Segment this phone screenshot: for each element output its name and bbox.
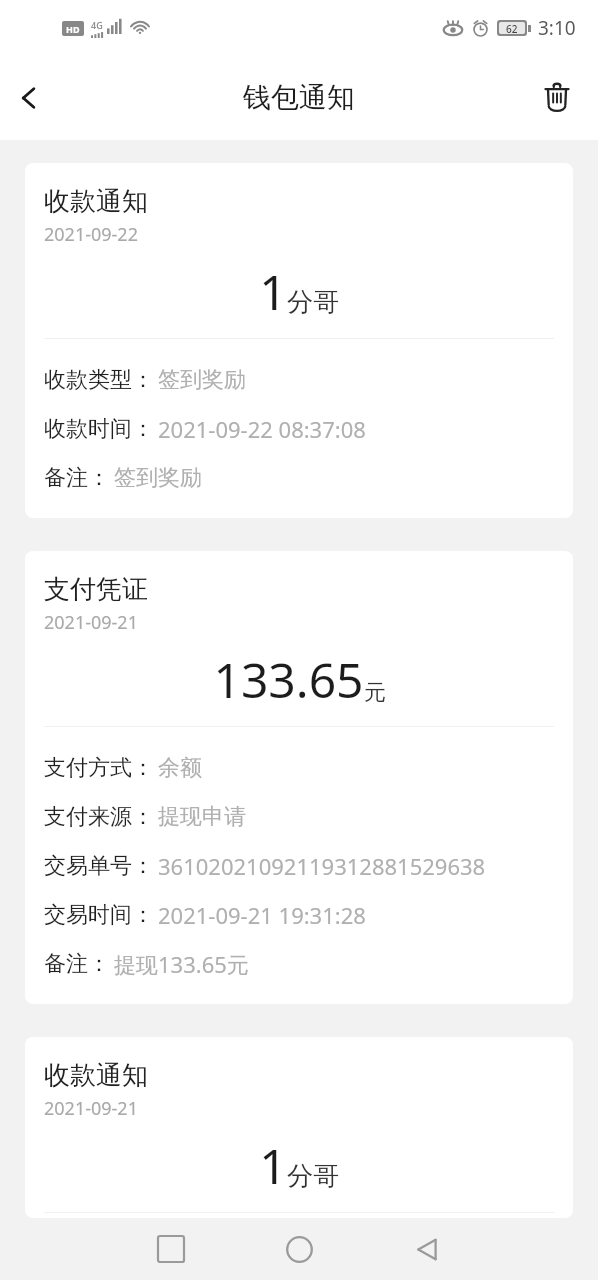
staticText: 提现133.65元 bbox=[114, 949, 249, 979]
staticText: 支付凭证 bbox=[44, 573, 148, 606]
staticText: 2021-09-21 19:31:28 bbox=[158, 900, 366, 930]
staticText: 余额 bbox=[158, 754, 202, 782]
staticText: 分哥 bbox=[287, 1160, 339, 1193]
button[interactable]: 支付凭证 bbox=[25, 551, 573, 1004]
staticText: 2021-09-22 08:37:08 bbox=[158, 414, 366, 444]
staticText: 2021-09-21 bbox=[44, 610, 138, 635]
staticText: 签到奖励 bbox=[114, 464, 202, 492]
staticText: 收款通知 bbox=[44, 185, 148, 218]
staticText: 1 bbox=[259, 1133, 287, 1198]
staticText: HD bbox=[66, 23, 80, 35]
button[interactable]: Home bbox=[235, 1218, 363, 1280]
staticText: 133.65 bbox=[213, 647, 364, 712]
staticText: 备注： bbox=[44, 464, 110, 492]
staticText: 元 bbox=[364, 679, 386, 707]
button[interactable]: Delete all bbox=[530, 71, 584, 125]
staticText: 钱包通知 bbox=[243, 80, 355, 115]
button[interactable]: 收款通知 bbox=[25, 163, 573, 518]
staticText: 收款类型： bbox=[44, 366, 154, 394]
staticText: 1 bbox=[259, 259, 287, 324]
staticText: 2021-09-21 bbox=[44, 1096, 138, 1121]
staticText: 签到奖励 bbox=[158, 366, 246, 394]
button[interactable]: Back bbox=[0, 69, 58, 127]
staticText: 交易时间： bbox=[44, 901, 154, 929]
staticText: 支付来源： bbox=[44, 803, 154, 831]
staticText: 36102021092119312881529638 bbox=[158, 851, 486, 881]
staticText: 分哥 bbox=[287, 286, 339, 319]
staticText: 62 bbox=[506, 22, 518, 34]
staticText: 4G bbox=[91, 19, 103, 31]
staticText: 支付方式： bbox=[44, 754, 154, 782]
button[interactable]: Back bbox=[363, 1218, 491, 1280]
staticText: 3:10 bbox=[538, 15, 576, 41]
staticText: 2021-09-22 bbox=[44, 222, 138, 247]
staticText: 交易单号： bbox=[44, 852, 154, 880]
button[interactable]: Recent apps bbox=[107, 1218, 235, 1280]
staticText: 收款时间： bbox=[44, 415, 154, 443]
staticText: 提现申请 bbox=[158, 803, 246, 831]
button[interactable]: 收款通知 bbox=[25, 1037, 573, 1218]
staticText: 收款通知 bbox=[44, 1059, 148, 1092]
staticText: 备注： bbox=[44, 950, 110, 978]
